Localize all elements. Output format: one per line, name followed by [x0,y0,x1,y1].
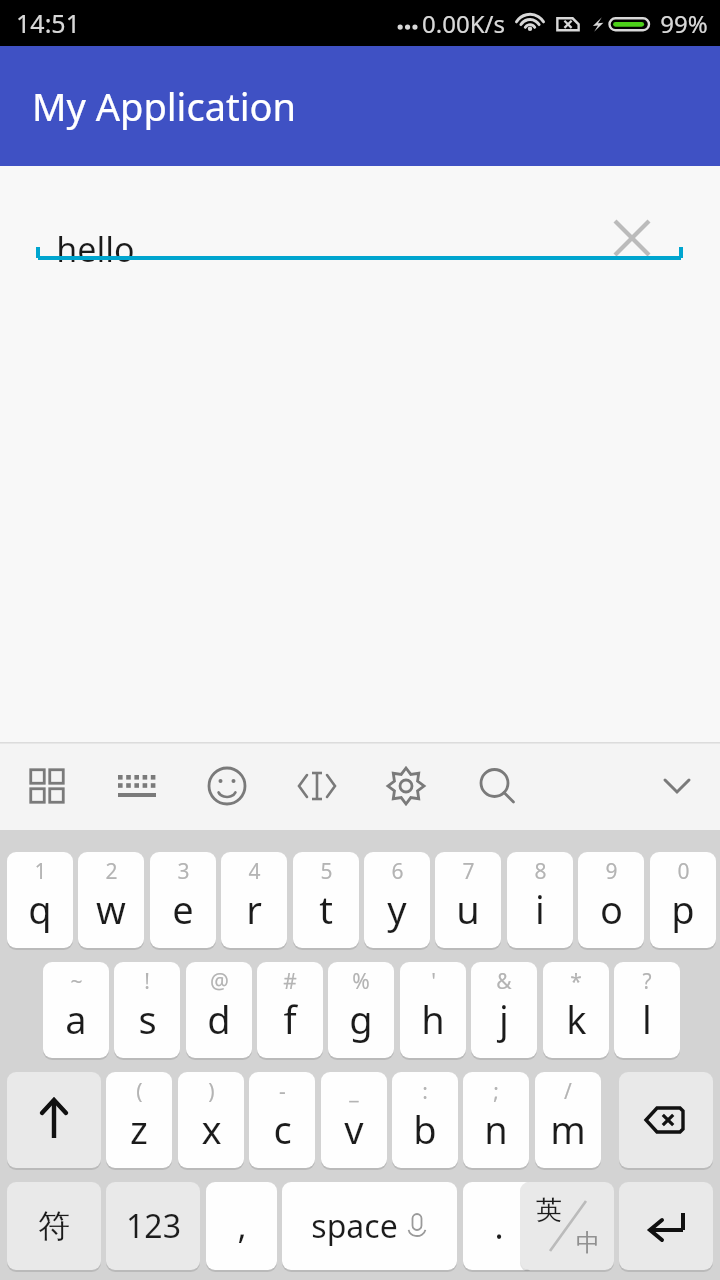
button[interactable]: ! [114,962,180,1058]
button[interactable]: Hide keyboard [645,754,709,818]
staticText: j [499,993,509,1045]
staticText: 9 [605,857,618,886]
button[interactable]: 0 [650,852,716,948]
staticText: r [246,883,262,935]
staticText: / [564,1077,572,1106]
staticText: ~ [70,967,83,996]
staticText: space [311,1204,398,1248]
staticText: ( [136,1077,143,1106]
staticText: l [642,993,652,1045]
staticText: x [201,1103,222,1155]
staticText: v [344,1103,364,1155]
button[interactable]: % [328,962,394,1058]
staticText: 0.00K/s [422,7,505,40]
button[interactable]: Settings [374,754,438,818]
staticText: % [352,967,370,996]
staticText: t [319,883,333,935]
staticText: 1 [34,857,47,886]
button[interactable]: @ [186,962,252,1058]
staticText: u [456,883,480,935]
staticText: ; [493,1077,499,1106]
staticText: e [172,883,194,935]
staticText: - [279,1077,286,1106]
staticText: @ [210,967,229,996]
staticText: 4 [248,857,261,886]
staticText: 99% [660,7,708,40]
button[interactable]: Emoji [195,754,259,818]
staticText: 符 [38,1206,70,1246]
staticText: 中 [576,1228,600,1258]
button[interactable]: ' [400,962,466,1058]
button[interactable]: 1 [7,852,73,948]
staticText: * [570,967,582,996]
button[interactable]: ; [463,1072,529,1168]
staticText: i [535,883,545,935]
staticText: 5 [320,857,333,886]
staticText: w [96,883,126,935]
button[interactable]: Clear text [600,206,664,270]
staticText: h [421,993,445,1045]
staticText: My Application [32,80,296,132]
button[interactable]: ? [614,962,680,1058]
button[interactable]: 3 [150,852,216,948]
button[interactable]: _ [321,1072,387,1168]
button[interactable]: 123 [106,1182,200,1270]
staticText: p [671,883,695,935]
button[interactable]: 2 [78,852,144,948]
button[interactable]: 9 [578,852,644,948]
staticText: . [494,1203,504,1249]
staticText: 6 [391,857,404,886]
button[interactable]: Move cursor [285,754,349,818]
button[interactable]: # [257,962,323,1058]
button[interactable]: Space [282,1182,457,1270]
button[interactable]: ~ [43,962,109,1058]
button[interactable]: ( [106,1072,172,1168]
staticText: & [496,967,512,996]
button[interactable]: 6 [364,852,430,948]
staticText: a [65,993,87,1045]
button[interactable]: Switch language [520,1182,614,1270]
button[interactable]: Shift [7,1072,101,1168]
button[interactable]: Enter [619,1182,713,1270]
button[interactable]: : [392,1072,458,1168]
staticText: hello [56,226,135,272]
button[interactable]: 5 [293,852,359,948]
button[interactable]: . [463,1182,534,1270]
staticText: f [283,993,297,1045]
staticText: 7 [462,857,475,886]
staticText: g [349,993,373,1045]
staticText: 英 [536,1194,562,1227]
button[interactable]: - [249,1072,315,1168]
button[interactable]: Search [465,754,529,818]
staticText: m [550,1103,586,1155]
button[interactable]: ) [178,1072,244,1168]
button[interactable]: 8 [507,852,573,948]
button[interactable]: Backspace [619,1072,713,1168]
staticText: 2 [105,857,118,886]
button[interactable]: 4 [221,852,287,948]
button[interactable]: , [206,1182,277,1270]
button[interactable]: Keyboard layout [105,754,169,818]
staticText: 123 [126,1204,181,1248]
button[interactable]: 7 [435,852,501,948]
button[interactable]: / [535,1072,601,1168]
staticText: # [283,967,297,996]
staticText: ! [144,967,150,996]
staticText: 14:51 [16,6,80,40]
button[interactable]: 符 [7,1182,101,1270]
staticText: b [413,1103,437,1155]
staticText: ' [431,967,436,996]
staticText: y [387,883,407,935]
button[interactable]: & [471,962,537,1058]
staticText: o [600,883,623,935]
staticText: c [273,1103,292,1155]
button[interactable]: Grid [15,754,79,818]
staticText: : [422,1077,428,1106]
staticText: _ [349,1077,359,1106]
staticText: , [237,1203,247,1249]
staticText: s [138,993,157,1045]
staticText: ) [208,1077,215,1106]
staticText: d [207,993,231,1045]
staticText: q [28,883,52,935]
button[interactable]: * [543,962,609,1058]
